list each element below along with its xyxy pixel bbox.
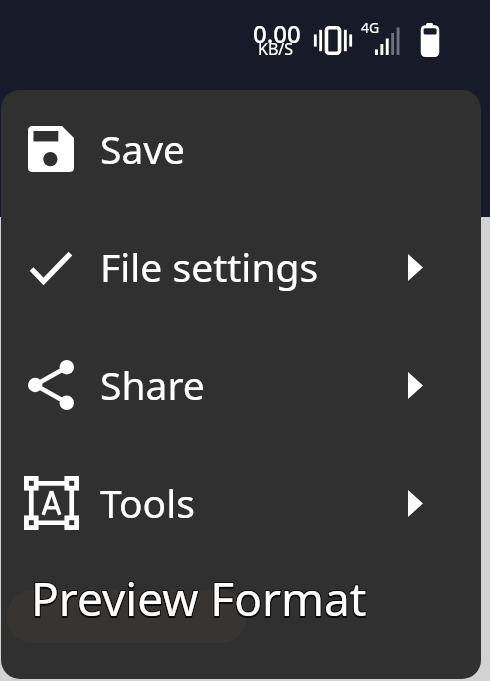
staticText: Preview Format [30, 566, 366, 629]
staticText: Preview Format [32, 566, 368, 629]
other: Mobile signal strength [375, 27, 403, 55]
button[interactable]: Share [1, 326, 481, 444]
staticText: Share [100, 358, 205, 411]
staticText: Preview Format [32, 567, 368, 630]
other: Vibrate mode [314, 26, 352, 55]
button[interactable]: Preview Format [1, 562, 481, 677]
staticText: File settings [100, 240, 319, 293]
other: Battery [419, 23, 441, 57]
staticText: Tools [100, 476, 195, 529]
button[interactable]: Save [1, 90, 481, 208]
staticText: Save [100, 122, 186, 175]
staticText: Preview Format [31, 569, 367, 632]
staticText: Preview Format [30, 569, 366, 632]
staticText: Preview Format [30, 567, 366, 630]
button[interactable]: Tools [1, 444, 481, 562]
staticText: 0.00 [253, 17, 301, 50]
staticText: Preview Format [31, 566, 367, 629]
button[interactable]: File settings [1, 208, 481, 326]
staticText: 4G [361, 18, 380, 37]
staticText: Preview Format [32, 569, 368, 632]
staticText: Preview Format [31, 567, 367, 630]
staticText: KB/S [258, 38, 294, 60]
